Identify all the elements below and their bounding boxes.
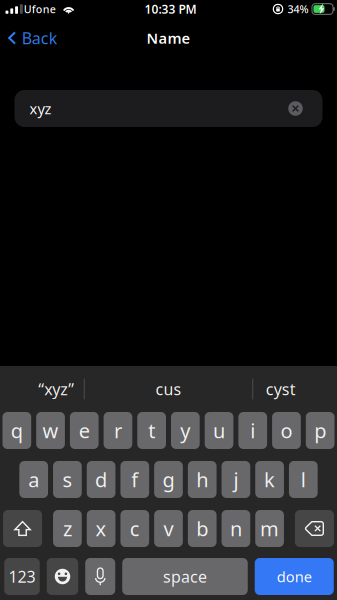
button[interactable]: l [289,461,318,498]
staticText: z [63,515,72,542]
staticText: “xyz” [38,378,74,400]
staticText: k [264,466,275,493]
button[interactable]: Shift [3,510,42,547]
staticText: a [28,466,39,493]
button[interactable]: x [87,510,115,547]
staticText: r [114,417,122,444]
button[interactable]: m [255,510,284,547]
button[interactable]: t [137,412,166,449]
staticText: 10:33 PM [144,1,196,17]
staticText: Ufone [24,2,56,16]
staticText: n [230,515,242,542]
button[interactable]: Clear text [279,90,311,127]
button[interactable]: z [53,510,82,547]
button[interactable]: p [306,412,334,449]
staticText: 123 [8,566,35,587]
staticText: q [11,417,23,444]
staticText: cus [155,378,181,400]
button[interactable]: i [238,412,267,449]
staticText: y [180,417,190,444]
button[interactable]: Dictation [85,558,115,595]
button[interactable]: c [120,510,149,547]
button[interactable]: s [53,461,82,498]
staticText: d [95,466,107,493]
staticText: u [213,417,225,444]
staticText: c [130,515,140,542]
staticText: xyz [29,99,51,118]
staticText: done [277,567,312,586]
staticText: x [96,515,107,542]
staticText: i [250,417,255,444]
button[interactable]: Emoji [47,558,78,595]
button[interactable]: k [255,461,284,498]
staticText: Back [22,27,58,49]
staticText: m [260,515,279,542]
button[interactable]: 123 [4,558,40,595]
button[interactable]: g [154,461,183,498]
staticText: f [131,466,138,493]
button[interactable]: y [171,412,200,449]
button[interactable]: f [120,461,149,498]
button[interactable]: Back [0,22,68,54]
button[interactable]: Delete [295,510,334,547]
button[interactable]: r [104,412,132,449]
staticText: t [148,417,155,444]
button[interactable]: u [205,412,233,449]
button[interactable]: cyst [225,366,337,412]
button[interactable]: h [188,461,217,498]
button[interactable]: d [87,461,115,498]
button[interactable]: o [272,412,301,449]
staticText: space [163,566,207,587]
staticText: l [301,466,306,493]
staticText: e [79,417,90,444]
button[interactable]: v [154,510,183,547]
staticText: p [314,417,326,444]
button[interactable]: q [2,412,31,449]
staticText: cyst [266,378,296,400]
button[interactable]: e [70,412,99,449]
staticText: o [280,417,292,444]
button[interactable]: “xyz” [0,366,112,412]
button[interactable]: a [19,461,48,498]
button[interactable]: n [222,510,250,547]
button[interactable]: b [188,510,217,547]
staticText: j [233,466,238,493]
button[interactable]: j [222,461,250,498]
staticText: 34% [287,2,308,16]
staticText: g [162,466,174,493]
staticText: v [163,515,173,542]
staticText: w [43,417,59,444]
staticText: s [62,466,72,493]
button[interactable]: w [36,412,65,449]
staticText: b [196,515,208,542]
button[interactable]: done [255,558,334,595]
button[interactable]: cus [112,366,225,412]
staticText: Name [146,28,190,48]
button[interactable]: space [122,558,248,595]
staticText: h [196,466,208,493]
